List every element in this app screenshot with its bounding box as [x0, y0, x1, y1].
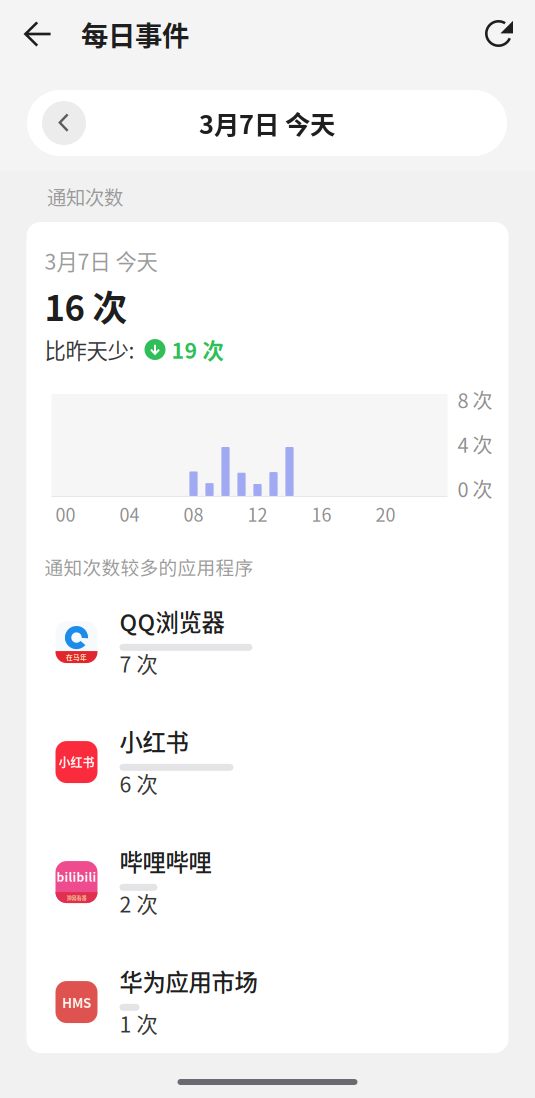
staticText: QQ浏览器: [119, 604, 224, 638]
staticText: 通知次数较多的应用程序: [44, 553, 253, 580]
staticText: 通知次数: [47, 182, 123, 210]
staticText: 0 次: [457, 474, 492, 503]
button[interactable]: Refresh: [485, 10, 535, 58]
staticText: 哔哩哔哩: [119, 844, 211, 878]
staticText: HMS: [62, 992, 91, 1012]
staticText: 08: [183, 501, 203, 527]
staticText: 6 次: [119, 768, 157, 799]
button[interactable]: Select date: [27, 90, 507, 156]
staticText: 8 次: [457, 385, 492, 414]
staticText: 弹幕看番: [66, 894, 86, 901]
staticText: 每日事件: [81, 14, 189, 54]
staticText: 1 次: [119, 1008, 157, 1039]
button[interactable]: 在马年: [55, 580, 496, 700]
staticText: 12: [247, 501, 267, 527]
staticText: 2 次: [119, 888, 157, 919]
staticText: 华为应用市场: [119, 964, 257, 998]
button[interactable]: HMS: [55, 940, 496, 1060]
staticText: 在马年: [66, 652, 87, 662]
button[interactable]: bilibili: [55, 820, 496, 940]
staticText: 小红书: [58, 753, 94, 771]
staticText: 比昨天少:: [44, 334, 134, 365]
staticText: 3月7日 今天: [44, 245, 157, 276]
staticText: 00: [55, 501, 75, 527]
staticText: 4 次: [457, 429, 492, 458]
staticText: 04: [119, 501, 139, 527]
staticText: bilibili: [56, 868, 96, 885]
button[interactable]: 小红书: [55, 700, 496, 820]
staticText: 16 次: [44, 281, 127, 331]
button[interactable]: Back: [0, 10, 81, 58]
staticText: 20: [375, 501, 395, 527]
staticText: 19 次: [171, 334, 223, 365]
staticText: 3月7日 今天: [199, 105, 335, 141]
staticText: 小红书: [119, 724, 188, 758]
staticText: 16: [311, 501, 331, 527]
staticText: 7 次: [119, 648, 157, 679]
